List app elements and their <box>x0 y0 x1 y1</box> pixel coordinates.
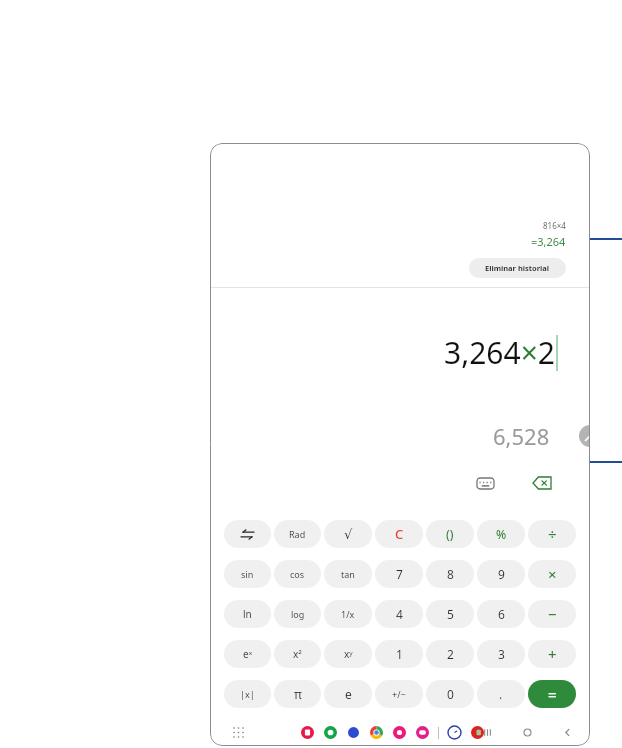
button[interactable]: () <box>426 520 474 548</box>
button[interactable]: Home <box>518 723 536 741</box>
staticText: ÷ <box>548 524 557 544</box>
button[interactable]: π <box>274 680 321 708</box>
button[interactable]: 2 <box>426 640 474 668</box>
staticText: 3 <box>498 646 505 662</box>
button[interactable]: eˣ <box>224 640 271 668</box>
staticText: eˣ <box>243 647 253 661</box>
staticText: log <box>291 608 305 620</box>
button[interactable]: − <box>528 600 576 628</box>
button[interactable]: Back <box>558 723 576 741</box>
button[interactable]: Backspace <box>526 472 558 494</box>
button[interactable]: e <box>324 680 372 708</box>
button[interactable]: Swap units <box>224 520 271 548</box>
staticText: Rad <box>289 528 306 540</box>
button[interactable]: . <box>477 680 525 708</box>
staticText: 7 <box>396 566 403 582</box>
staticText: 8 <box>447 566 454 582</box>
button[interactable]: 1 <box>375 640 423 668</box>
staticText: 816×4 <box>543 220 566 231</box>
staticText: e <box>345 686 352 702</box>
staticText: = <box>548 684 557 704</box>
staticText: () <box>446 526 454 542</box>
button[interactable]: 3 <box>477 640 525 668</box>
button[interactable]: log <box>274 600 321 628</box>
button[interactable]: √ <box>324 520 372 548</box>
button[interactable]: 5 <box>426 600 474 628</box>
button[interactable]: = <box>528 680 576 708</box>
staticText: cos <box>290 568 305 580</box>
staticText: 6,528 <box>493 421 550 451</box>
staticText: 4 <box>396 606 403 622</box>
staticText: 6 <box>498 606 505 622</box>
button[interactable]: All apps <box>230 724 246 740</box>
staticText: √ <box>344 527 353 542</box>
button[interactable]: % <box>477 520 525 548</box>
button[interactable]: 8 <box>426 560 474 588</box>
staticText: × <box>548 564 557 584</box>
button[interactable]: + <box>528 640 576 668</box>
staticText: Eliminar historial <box>485 263 550 273</box>
staticText: 1/x <box>341 608 355 620</box>
button[interactable]: App 6 <box>415 725 430 740</box>
staticText: 3,264×2 <box>444 332 555 373</box>
button[interactable]: x² <box>274 640 321 668</box>
button[interactable]: cos <box>274 560 321 588</box>
button[interactable]: 0 <box>426 680 474 708</box>
button[interactable]: Chrome <box>369 725 384 740</box>
button[interactable]: Keyboard <box>469 472 501 494</box>
button[interactable]: tan <box>324 560 372 588</box>
button[interactable]: Recents <box>478 723 496 741</box>
staticText: 1 <box>396 646 403 662</box>
button[interactable]: App 1 <box>300 725 315 740</box>
staticText: xʸ <box>344 647 353 661</box>
button[interactable]: sin <box>224 560 271 588</box>
staticText: tan <box>341 568 355 580</box>
button[interactable]: Degree mode <box>579 425 590 447</box>
staticText: 2 <box>447 646 454 662</box>
staticText: sin <box>241 568 254 580</box>
button[interactable]: 1/x <box>324 600 372 628</box>
button[interactable]: 9 <box>477 560 525 588</box>
staticText: +/− <box>392 688 406 700</box>
staticText: x² <box>293 647 302 661</box>
button[interactable]: Eliminar historial <box>469 258 566 278</box>
button[interactable]: 6 <box>477 600 525 628</box>
staticText: C <box>395 525 404 543</box>
staticText: − <box>548 604 557 624</box>
button[interactable]: |x| <box>224 680 271 708</box>
button[interactable]: App 3 <box>346 725 361 740</box>
button[interactable]: ÷ <box>528 520 576 548</box>
button[interactable]: App 8 <box>470 725 485 740</box>
staticText: 9 <box>498 566 505 582</box>
button[interactable]: xʸ <box>324 640 372 668</box>
button[interactable]: +/− <box>375 680 423 708</box>
staticText: % <box>496 526 507 542</box>
staticText: 5 <box>447 606 454 622</box>
button[interactable]: App 2 <box>323 725 338 740</box>
button[interactable]: Rad <box>274 520 321 548</box>
button[interactable]: × <box>528 560 576 588</box>
staticText: =3,264 <box>531 234 566 249</box>
button[interactable]: C <box>375 520 423 548</box>
staticText: ln <box>243 607 252 621</box>
button[interactable]: Clock <box>447 725 462 740</box>
staticText: + <box>548 644 557 664</box>
button[interactable]: 4 <box>375 600 423 628</box>
staticText: . <box>499 686 503 702</box>
button[interactable]: ln <box>224 600 271 628</box>
button[interactable]: App 5 <box>392 725 407 740</box>
staticText: 0 <box>447 686 454 702</box>
staticText: π <box>294 686 302 702</box>
staticText: |x| <box>240 688 255 700</box>
button[interactable]: 7 <box>375 560 423 588</box>
